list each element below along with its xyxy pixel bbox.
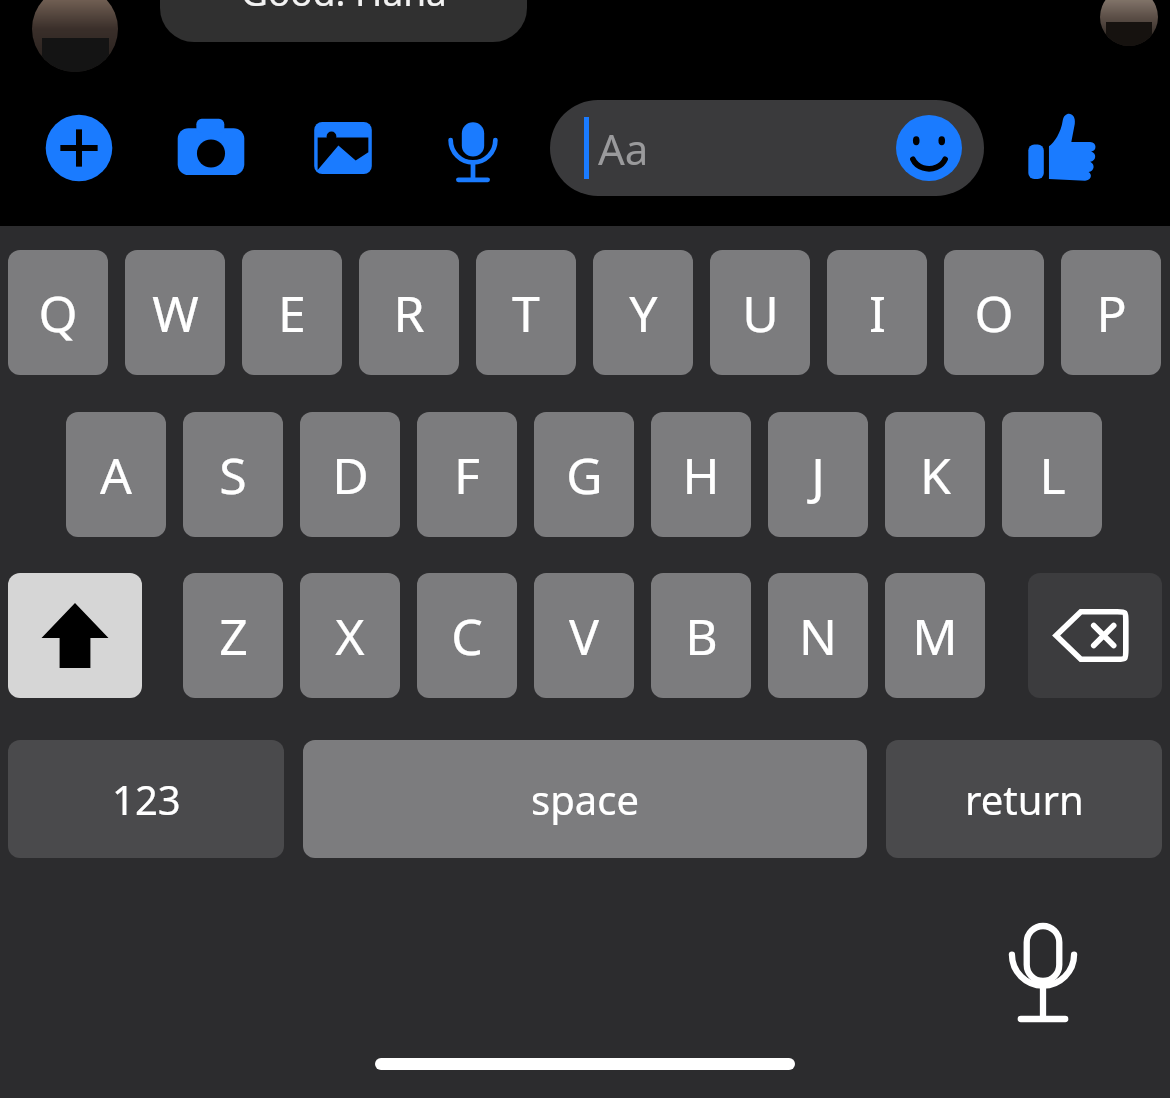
button[interactable]: 123 [8, 740, 284, 858]
button[interactable]: X [300, 573, 400, 698]
staticText: space [531, 772, 639, 826]
staticText: O [974, 279, 1014, 347]
button[interactable]: I [827, 250, 927, 375]
button[interactable]: B [651, 573, 751, 698]
button[interactable]: U [710, 250, 810, 375]
staticText: D [332, 441, 369, 509]
button[interactable]: return [886, 740, 1162, 858]
staticText: return [965, 772, 1084, 826]
button[interactable]: P [1061, 250, 1161, 375]
button[interactable]: Add [34, 103, 124, 193]
button[interactable]: G [534, 412, 634, 537]
staticText: 123 [112, 772, 181, 826]
button[interactable]: Dictation [985, 916, 1101, 1032]
staticText: G [566, 441, 603, 509]
staticText: W [152, 279, 199, 347]
staticText: Good. Haha [241, 0, 447, 16]
button[interactable]: Aa [550, 100, 984, 196]
staticText: M [912, 602, 958, 670]
staticText: A [100, 441, 132, 509]
staticText: F [454, 441, 480, 509]
staticText: L [1039, 441, 1066, 509]
staticText: P [1096, 279, 1127, 347]
button[interactable]: Photos [298, 103, 388, 193]
button[interactable]: Voice message [430, 105, 516, 191]
button[interactable]: D [300, 412, 400, 537]
staticText: S [219, 441, 247, 509]
button[interactable]: M [885, 573, 985, 698]
button[interactable]: E [242, 250, 342, 375]
button[interactable]: W [125, 250, 225, 375]
staticText: I [869, 279, 886, 347]
button[interactable]: V [534, 573, 634, 698]
button[interactable]: J [768, 412, 868, 537]
button[interactable]: space [303, 740, 867, 858]
button[interactable]: S [183, 412, 283, 537]
button[interactable]: Y [593, 250, 693, 375]
button[interactable]: A [66, 412, 166, 537]
staticText: U [742, 279, 779, 347]
staticText: H [682, 441, 720, 509]
button[interactable]: C [417, 573, 517, 698]
staticText: Aa [598, 120, 649, 177]
staticText: E [278, 279, 306, 347]
button[interactable]: O [944, 250, 1044, 375]
button[interactable]: Send like [1018, 105, 1104, 191]
staticText: J [811, 441, 825, 509]
button[interactable]: N [768, 573, 868, 698]
button[interactable]: Z [183, 573, 283, 698]
button[interactable]: F [417, 412, 517, 537]
staticText: V [569, 602, 599, 670]
staticText: N [799, 602, 837, 670]
button[interactable]: L [1002, 412, 1102, 537]
staticText: Y [629, 279, 658, 347]
staticText: R [393, 279, 425, 347]
button[interactable]: R [359, 250, 459, 375]
staticText: X [335, 602, 365, 670]
staticText: B [685, 602, 718, 670]
button[interactable]: Camera [166, 103, 256, 193]
button[interactable]: Emoji [896, 115, 962, 181]
button[interactable]: K [885, 412, 985, 537]
button[interactable]: Backspace [1028, 573, 1162, 698]
staticText: T [512, 279, 540, 347]
button[interactable]: Shift [8, 573, 142, 698]
button[interactable]: Q [8, 250, 108, 375]
staticText: Z [219, 602, 248, 670]
staticText: K [920, 441, 951, 509]
button[interactable]: H [651, 412, 751, 537]
button[interactable]: T [476, 250, 576, 375]
staticText: C [451, 602, 483, 670]
staticText: Q [38, 279, 78, 347]
